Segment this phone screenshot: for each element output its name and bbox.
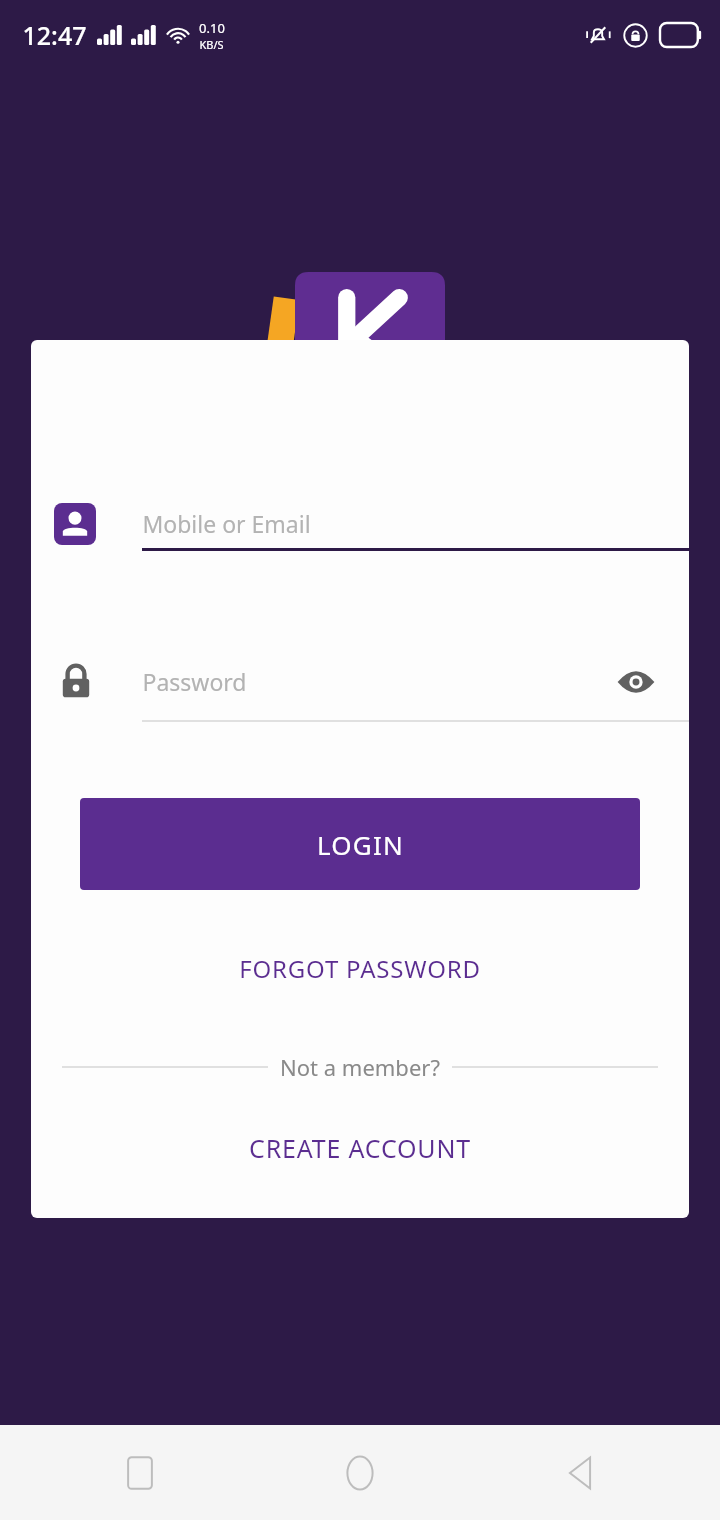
staticText: Mobile or Email xyxy=(142,508,311,539)
button[interactable]: CREATE ACCOUNT xyxy=(31,1118,689,1178)
staticText: Not a member? xyxy=(280,1052,440,1082)
staticText: LOGIN xyxy=(317,827,404,862)
staticText: 0.10 xyxy=(199,19,225,37)
button[interactable]: FORGOT PASSWORD xyxy=(31,940,689,996)
staticText: Password xyxy=(142,666,247,697)
staticText: FORGOT PASSWORD xyxy=(239,952,481,985)
button[interactable]: Back xyxy=(470,1425,690,1520)
button[interactable]: Show password xyxy=(613,659,659,705)
button[interactable]: Recent apps xyxy=(30,1425,250,1520)
button[interactable]: Home xyxy=(250,1425,470,1520)
staticText: 12:47 xyxy=(22,18,87,52)
staticText: KB/S xyxy=(199,37,224,52)
button[interactable]: Password xyxy=(54,643,666,733)
button[interactable]: LOGIN xyxy=(80,798,640,890)
button[interactable]: Mobile or Email xyxy=(54,485,666,575)
staticText: CREATE ACCOUNT xyxy=(249,1131,471,1165)
